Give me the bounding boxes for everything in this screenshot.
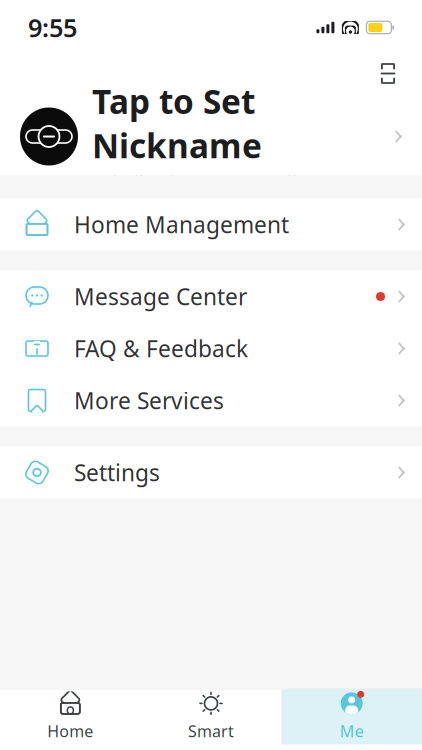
staticText: More Services bbox=[74, 385, 224, 415]
staticText: 9:55 bbox=[28, 11, 77, 44]
staticText: Settings bbox=[74, 457, 160, 487]
staticText: Me bbox=[340, 720, 364, 742]
button[interactable]: Scan QR code bbox=[366, 53, 410, 93]
staticText: Message Center bbox=[74, 281, 247, 311]
staticText: Home bbox=[47, 720, 93, 742]
staticText: Smart bbox=[188, 720, 234, 742]
button[interactable]: Home Management bbox=[0, 198, 422, 250]
button[interactable]: More Services bbox=[0, 374, 422, 426]
button[interactable]: Tap to Set Nickname bbox=[0, 97, 422, 175]
button[interactable]: Me bbox=[281, 688, 422, 744]
button[interactable]: Settings bbox=[0, 446, 422, 498]
staticText: zohaibazhar359@gmail.com bbox=[92, 169, 339, 194]
button[interactable]: Home bbox=[0, 688, 141, 744]
button[interactable]: Message Center bbox=[0, 270, 422, 322]
staticText: FAQ & Feedback bbox=[74, 333, 248, 363]
staticText: Home Management bbox=[74, 209, 289, 239]
button[interactable]: FAQ & Feedback bbox=[0, 322, 422, 374]
staticText: Tap to Set Nickname bbox=[92, 79, 262, 167]
button[interactable]: Smart bbox=[141, 688, 281, 744]
